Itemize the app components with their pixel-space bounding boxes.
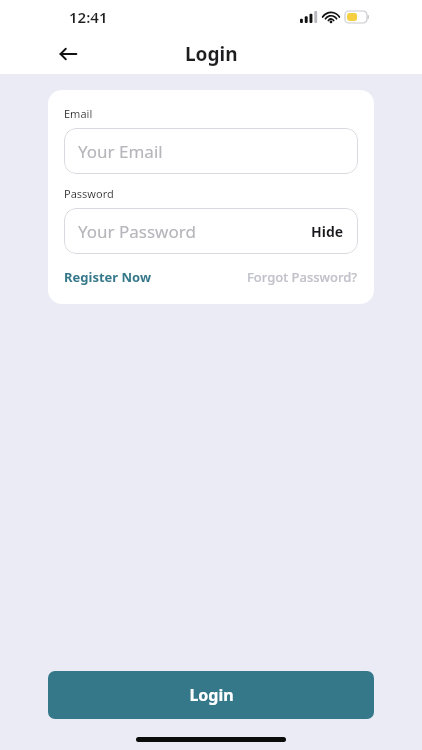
staticText: Your Password — [78, 220, 196, 243]
button[interactable]: Hide — [311, 222, 344, 241]
staticText: Register Now — [64, 268, 152, 286]
button[interactable]: Forgot Password? — [247, 268, 358, 286]
button[interactable]: Your Password — [64, 208, 358, 254]
button[interactable]: Login — [48, 671, 374, 719]
staticText: Forgot Password? — [247, 268, 358, 286]
staticText: Your Email — [78, 140, 163, 163]
staticText: 12:41 — [69, 7, 108, 27]
button[interactable]: Back — [48, 34, 88, 74]
staticText: Login — [185, 41, 238, 67]
staticText: Hide — [311, 222, 344, 241]
staticText: Password — [64, 186, 114, 201]
button[interactable]: Register Now — [64, 268, 152, 286]
button[interactable]: Your Email — [64, 128, 358, 174]
staticText: Email — [64, 106, 93, 121]
staticText: Login — [189, 684, 234, 706]
